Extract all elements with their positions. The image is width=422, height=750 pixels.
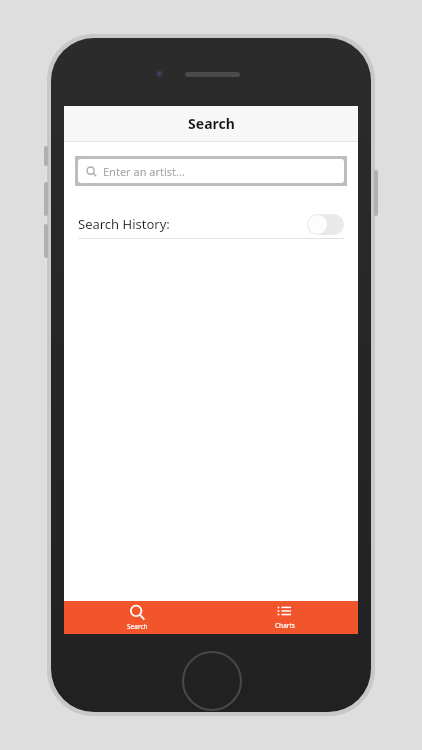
- staticText: Enter an artist...: [103, 164, 185, 179]
- staticText: Search: [127, 622, 148, 631]
- staticText: Search: [188, 114, 235, 133]
- button[interactable]: Search History:: [78, 210, 344, 238]
- other: Charts: [277, 605, 292, 620]
- button[interactable]: Charts: [211, 601, 358, 634]
- button[interactable]: Search: [64, 601, 211, 634]
- button[interactable]: Enter an artist...: [78, 159, 344, 183]
- other: Search: [129, 604, 146, 621]
- button[interactable]: Search history toggle: [307, 214, 344, 235]
- staticText: Charts: [275, 621, 295, 630]
- staticText: Search History:: [78, 215, 170, 233]
